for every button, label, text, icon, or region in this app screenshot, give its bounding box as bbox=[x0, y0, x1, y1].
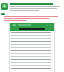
button[interactable] bbox=[10, 43, 54, 46]
button[interactable] bbox=[10, 55, 54, 58]
button[interactable] bbox=[10, 49, 54, 52]
button[interactable] bbox=[1, 13, 5, 15]
button[interactable] bbox=[10, 31, 54, 34]
button[interactable] bbox=[10, 23, 54, 27]
button[interactable]: Search bbox=[19, 28, 45, 30]
button[interactable] bbox=[10, 46, 54, 49]
button[interactable] bbox=[10, 52, 54, 55]
button[interactable] bbox=[10, 64, 54, 67]
button[interactable] bbox=[10, 40, 54, 43]
button[interactable]: App icon bbox=[1, 2, 63, 11]
button[interactable] bbox=[10, 34, 54, 37]
button[interactable] bbox=[10, 67, 54, 70]
other: App icon bbox=[1, 3, 8, 10]
button[interactable] bbox=[10, 61, 54, 64]
button[interactable] bbox=[10, 37, 54, 40]
button[interactable] bbox=[10, 58, 54, 61]
